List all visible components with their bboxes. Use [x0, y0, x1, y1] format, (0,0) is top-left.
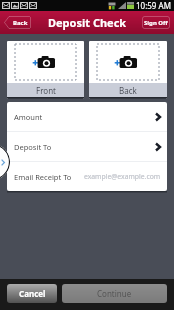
staticText: Amount: [14, 112, 43, 122]
button[interactable]: Open navigation menu: [0, 144, 10, 180]
staticText: Deposit Check: [48, 15, 127, 30]
button[interactable]: Email Receipt To: [7, 162, 167, 191]
button[interactable]: Front: [7, 41, 84, 99]
staticText: example@example.com: [84, 172, 161, 181]
button[interactable]: Back: [4, 16, 31, 29]
staticText: Sign Off: [144, 19, 168, 27]
staticText: Email Receipt To: [14, 172, 72, 182]
staticText: Front: [36, 85, 56, 96]
staticText: 10:59 AM: [136, 0, 171, 11]
staticText: Back: [13, 19, 28, 27]
button[interactable]: Back: [89, 41, 167, 99]
button[interactable]: Sign Off: [142, 16, 170, 29]
button[interactable]: Deposit To: [7, 132, 167, 161]
button[interactable]: Continue: [62, 284, 167, 303]
staticText: Deposit To: [14, 142, 52, 152]
button[interactable]: Cancel: [7, 284, 57, 303]
staticText: Cancel: [19, 288, 46, 299]
staticText: Continue: [97, 288, 132, 299]
button[interactable]: Amount: [7, 102, 167, 131]
staticText: Back: [119, 85, 137, 96]
